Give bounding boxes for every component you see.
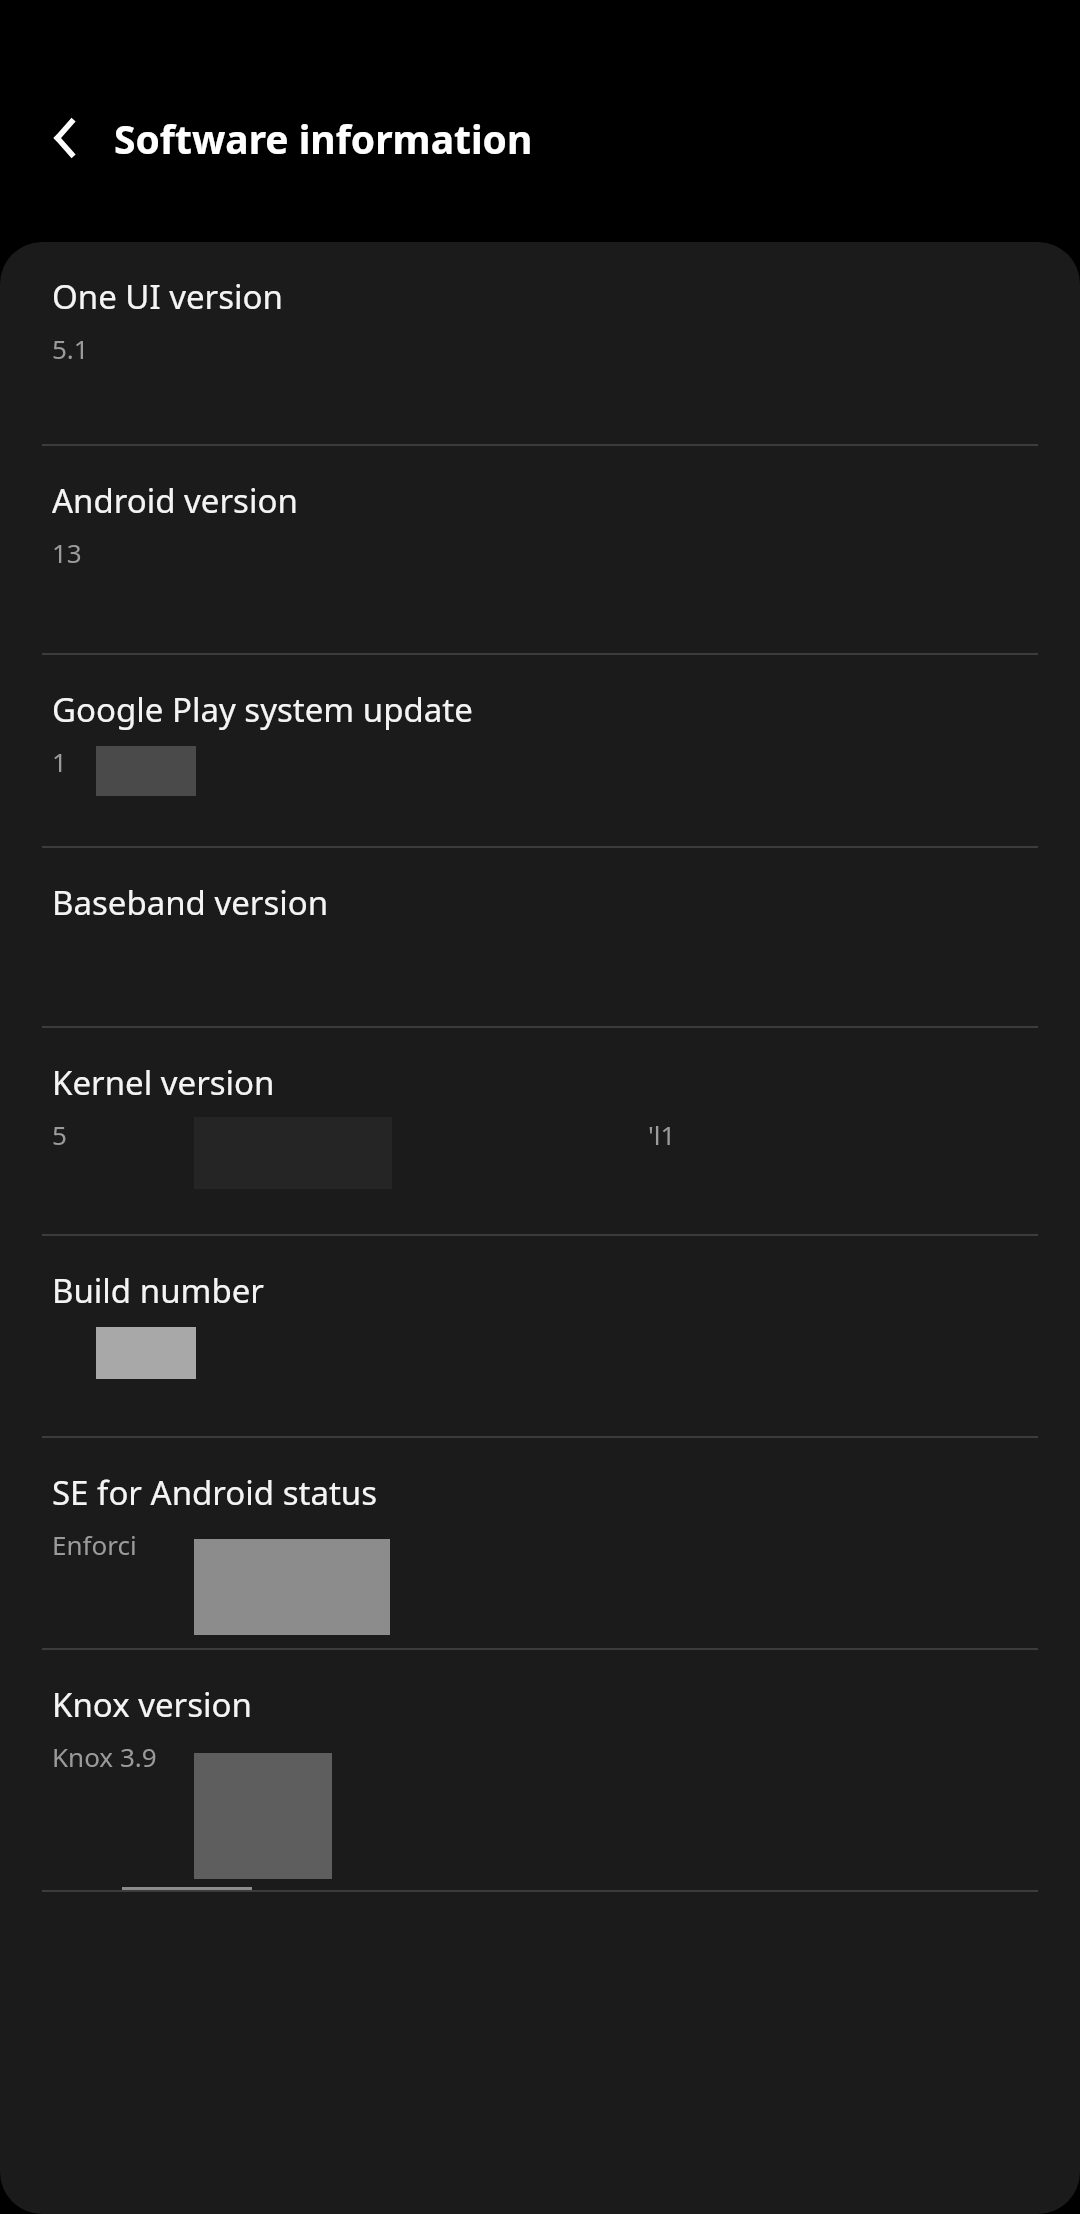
staticText: SE for Android status: [52, 1470, 378, 1515]
button[interactable]: Knox version: [0, 1650, 1080, 1890]
button[interactable]: Kernel version: [0, 1028, 1080, 1234]
staticText: Knox version: [52, 1682, 252, 1727]
button[interactable]: Google Play system update: [0, 655, 1080, 846]
staticText: Knox 3.9: [52, 1739, 157, 1774]
staticText: Baseband version: [52, 880, 329, 925]
staticText: 5.1: [52, 331, 89, 366]
button[interactable]: Baseband version: [0, 848, 1080, 1026]
staticText: 5: [52, 1117, 67, 1152]
button[interactable]: Android version: [0, 446, 1080, 653]
button[interactable]: SE for Android status: [0, 1438, 1080, 1648]
staticText: Kernel version: [52, 1060, 275, 1105]
staticText: Build number: [52, 1268, 264, 1313]
staticText: 13: [52, 535, 82, 570]
button[interactable]: Build number: [0, 1236, 1080, 1436]
staticText: 1: [52, 744, 67, 779]
button[interactable]: Back: [32, 104, 100, 172]
staticText: Enforci: [52, 1527, 137, 1562]
staticText: One UI version: [52, 274, 283, 319]
staticText: Android version: [52, 478, 298, 523]
staticText: Software information: [114, 112, 533, 165]
staticText: Google Play system update: [52, 687, 473, 732]
staticText: 'l1: [648, 1117, 676, 1152]
button[interactable]: One UI version: [0, 242, 1080, 444]
